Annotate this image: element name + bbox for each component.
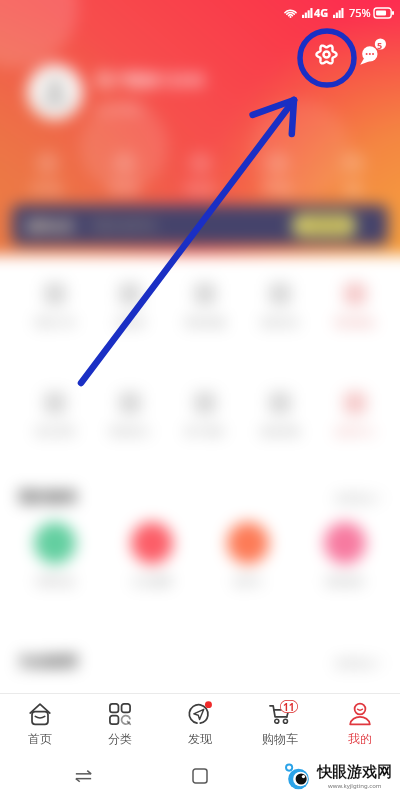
button[interactable]: 我的收藏	[168, 283, 242, 329]
button[interactable]: 退换货物	[243, 392, 317, 438]
staticText: 待付款	[32, 182, 62, 195]
staticText: 超级会员	[26, 218, 74, 233]
staticText: 保险服务	[325, 575, 365, 588]
staticText: 5	[377, 39, 383, 51]
button[interactable]: 客户服务	[168, 392, 242, 438]
staticText: www.kyjlgting.com	[328, 782, 382, 790]
staticText: 优惠券	[115, 316, 145, 329]
button[interactable]: 待付款	[10, 152, 84, 195]
button[interactable]: Messages, 5 unread	[358, 36, 390, 68]
button[interactable]: 优惠券	[93, 283, 167, 329]
staticText: 我的	[348, 731, 372, 746]
staticText: 待发货	[109, 182, 139, 195]
staticText: 会员等级 >	[95, 100, 149, 115]
staticText: 购物车	[262, 731, 298, 746]
staticText: 用户昵称12345	[95, 69, 205, 91]
staticText: 11	[283, 700, 295, 713]
staticText: 查看更多 >	[335, 656, 384, 670]
button[interactable]: 退款	[316, 152, 390, 195]
staticText: 待收货	[185, 182, 215, 195]
staticText: 查看更多 >	[335, 491, 384, 505]
button[interactable]: 地址管理	[18, 392, 92, 438]
button[interactable]: 我的	[320, 693, 400, 751]
button[interactable]: 保险服务	[300, 522, 390, 588]
button[interactable]: 会员中心	[318, 392, 392, 438]
staticText: 生活缴费	[132, 575, 172, 588]
button[interactable]: 待收货	[163, 152, 237, 195]
staticText: 快眼游戏网	[317, 763, 392, 782]
button[interactable]: 浏览历史	[243, 283, 317, 329]
button[interactable]: 发现	[160, 693, 240, 751]
button[interactable]: 待发货	[87, 152, 161, 195]
button[interactable]: 信用卡	[203, 522, 293, 588]
staticText: 75%	[349, 5, 371, 20]
staticText: 首页	[28, 731, 52, 746]
button[interactable]: 我的积分	[93, 392, 167, 438]
button[interactable]: 超级会员	[12, 205, 388, 245]
staticText: 待评价	[262, 182, 292, 195]
staticText: 发现	[188, 731, 212, 746]
button[interactable]: 我的订单	[18, 283, 92, 329]
button[interactable]: 我的钱包	[318, 283, 392, 329]
staticText: 退款	[343, 182, 363, 195]
staticText: 立即开通	[304, 219, 344, 232]
staticText: 4G	[314, 5, 329, 20]
button[interactable]: 话费充值	[10, 522, 100, 588]
button[interactable]: Back	[58, 751, 108, 800]
button[interactable]: Recents	[175, 751, 225, 800]
staticText: 分类	[108, 731, 132, 746]
button[interactable]: 首页	[0, 693, 80, 751]
button[interactable]: 生活缴费	[107, 522, 197, 588]
button[interactable]: 11	[240, 693, 320, 751]
button[interactable]: Settings	[312, 40, 341, 69]
staticText: 为你推荐	[18, 653, 78, 672]
button[interactable]: 分类	[80, 693, 160, 751]
button[interactable]: 待评价	[240, 152, 314, 195]
staticText: 我的服务	[18, 488, 78, 507]
